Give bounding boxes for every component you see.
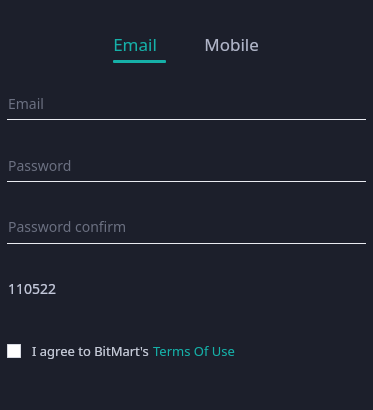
button[interactable]: Mobile	[196, 28, 267, 61]
staticText: Email	[8, 94, 44, 113]
button[interactable]: Agree to terms checkbox	[0, 338, 373, 364]
button[interactable]: Email	[105, 28, 165, 61]
staticText: Mobile	[204, 33, 259, 56]
staticText: Password	[8, 156, 72, 175]
staticText: 110522	[8, 279, 57, 298]
other: Agree to terms checkbox	[7, 344, 21, 358]
staticText: Email	[113, 33, 157, 56]
button[interactable]: Terms Of Use	[153, 342, 235, 360]
staticText: Password confirm	[8, 217, 127, 236]
staticText: Terms Of Use	[153, 342, 235, 360]
staticText: I agree to BitMart's	[32, 342, 153, 360]
